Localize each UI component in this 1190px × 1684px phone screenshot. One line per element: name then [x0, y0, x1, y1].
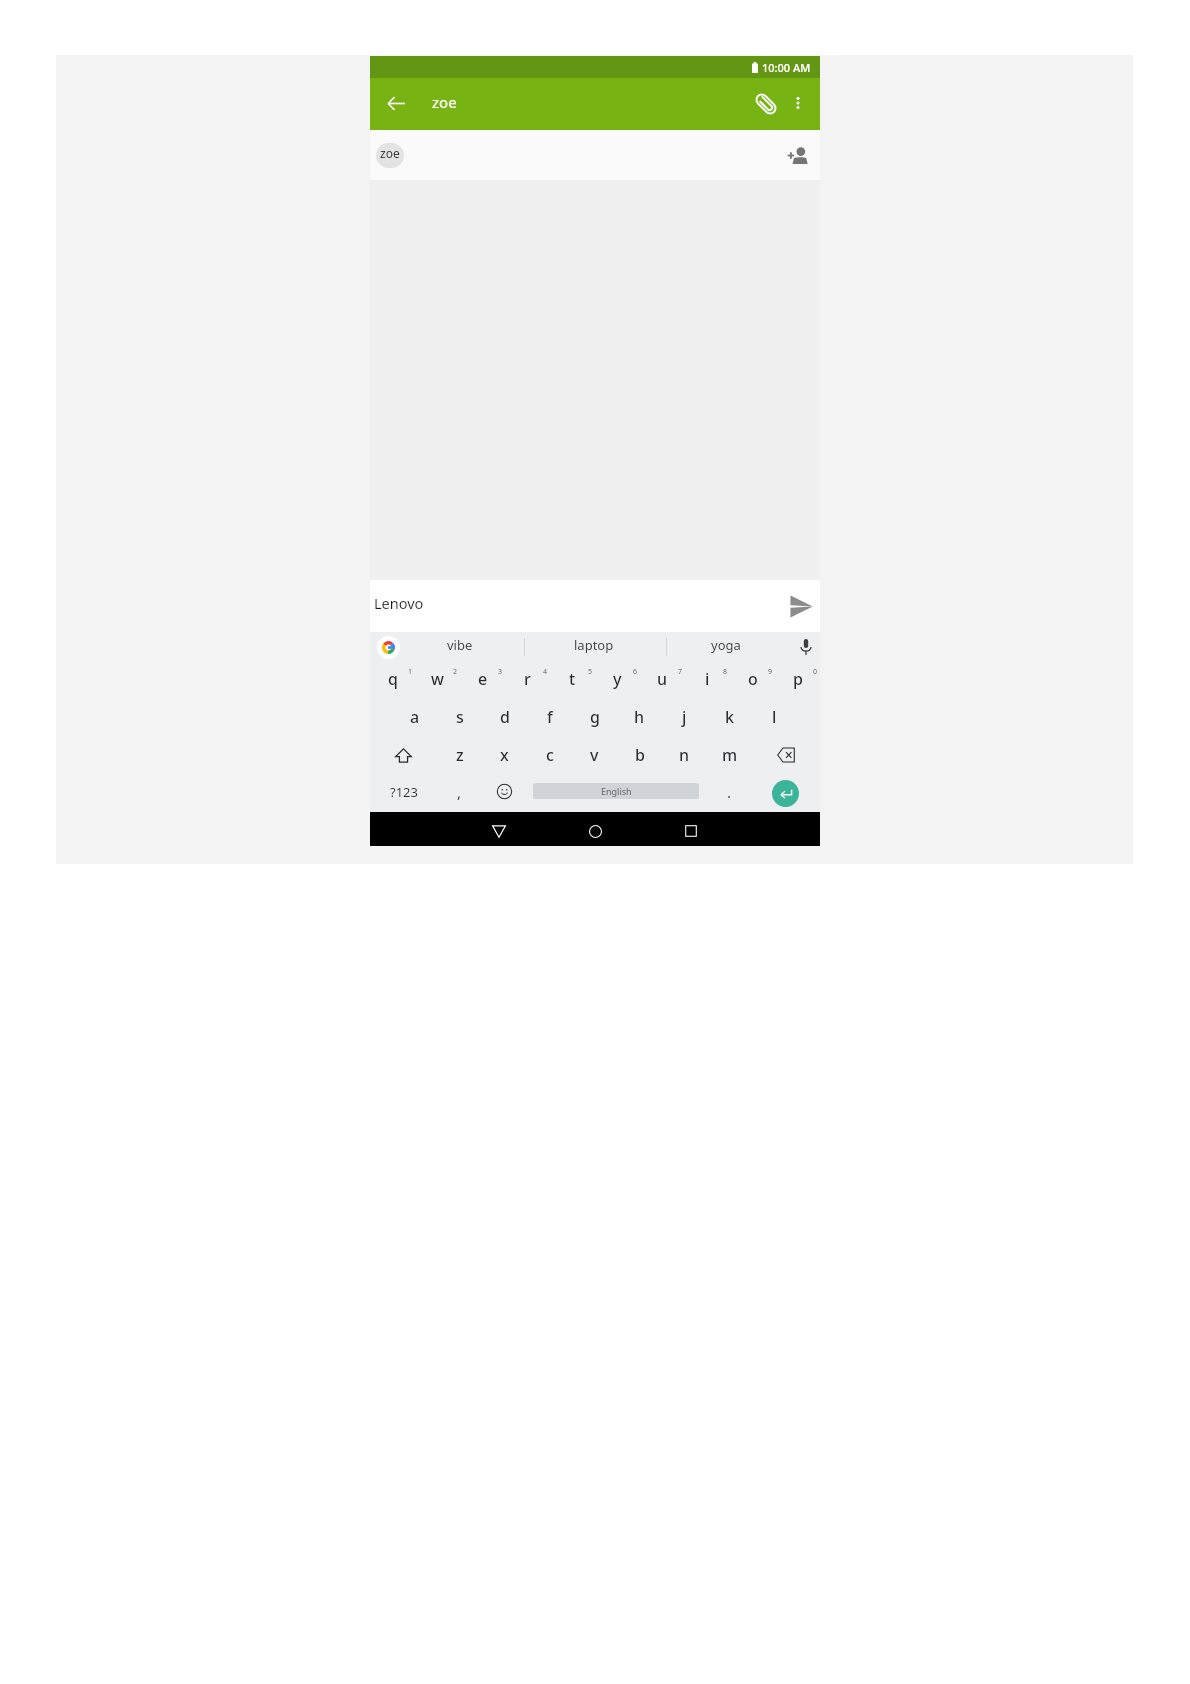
button[interactable]: k — [707, 700, 752, 738]
staticText: x — [500, 744, 509, 766]
button[interactable]: Back — [475, 812, 523, 846]
staticText: zoe — [432, 92, 457, 112]
button[interactable]: Shift — [370, 738, 437, 776]
staticText: 3 — [498, 667, 503, 677]
button[interactable]: Enter — [752, 776, 820, 812]
button[interactable]: f — [527, 700, 572, 738]
staticText: p — [793, 668, 803, 690]
staticText: k — [725, 706, 734, 728]
button[interactable]: i — [685, 662, 730, 700]
staticText: Lenovo — [374, 593, 424, 613]
button[interactable]: j — [662, 700, 707, 738]
staticText: c — [546, 744, 554, 766]
staticText: u — [657, 668, 668, 690]
staticText: 8 — [723, 667, 728, 677]
button[interactable]: Home — [571, 812, 619, 846]
staticText: laptop — [574, 636, 614, 654]
button[interactable]: b — [617, 738, 662, 776]
button[interactable]: Send — [783, 588, 819, 624]
button[interactable]: Recent apps — [667, 812, 715, 846]
staticText: vibe — [447, 636, 473, 654]
staticText: 2 — [453, 667, 458, 677]
button[interactable]: z — [437, 738, 482, 776]
button[interactable]: g — [572, 700, 617, 738]
button[interactable]: r — [505, 662, 550, 700]
button[interactable]: v — [572, 738, 617, 776]
button[interactable]: m — [707, 738, 752, 776]
button[interactable]: zoe — [376, 143, 404, 168]
staticText: j — [682, 706, 687, 728]
button[interactable]: y — [595, 662, 640, 700]
button[interactable]: Google search — [376, 632, 400, 662]
staticText: 0 — [813, 667, 818, 677]
staticText: . — [727, 782, 732, 802]
staticText: i — [705, 668, 710, 690]
button[interactable]: a — [392, 700, 437, 738]
staticText: y — [613, 668, 622, 690]
staticText: v — [590, 744, 599, 766]
staticText: w — [431, 668, 444, 690]
button[interactable]: t — [550, 662, 595, 700]
button[interactable]: , — [437, 776, 482, 812]
staticText: 10:00 AM — [762, 60, 811, 75]
staticText: r — [524, 668, 531, 690]
staticText: l — [772, 706, 777, 728]
staticText: z — [456, 744, 464, 766]
staticText: f — [547, 706, 553, 728]
staticText: t — [569, 668, 576, 690]
staticText: 5 — [588, 667, 593, 677]
button[interactable]: vibe — [397, 632, 523, 662]
button[interactable]: c — [527, 738, 572, 776]
staticText: 7 — [678, 667, 683, 677]
staticText: e — [478, 668, 488, 690]
staticText: b — [635, 744, 645, 766]
staticText: 9 — [768, 667, 773, 677]
staticText: yoga — [711, 636, 741, 654]
button[interactable]: ?123 — [370, 776, 437, 812]
staticText: g — [590, 706, 600, 728]
button[interactable]: p — [775, 662, 820, 700]
button[interactable]: h — [617, 700, 662, 738]
button[interactable]: s — [437, 700, 482, 738]
staticText: o — [748, 668, 758, 690]
button[interactable]: Backspace — [752, 738, 820, 776]
staticText: 4 — [543, 667, 548, 677]
button[interactable]: laptop — [523, 632, 664, 662]
button[interactable]: o — [730, 662, 775, 700]
staticText: 6 — [633, 667, 638, 677]
button[interactable]: Voice input — [793, 634, 819, 660]
button[interactable]: e — [460, 662, 505, 700]
staticText: s — [456, 706, 464, 728]
staticText: d — [500, 706, 510, 728]
button[interactable]: x — [482, 738, 527, 776]
button[interactable]: yoga — [666, 632, 786, 662]
button[interactable]: English — [533, 783, 699, 799]
button[interactable]: Navigate up — [374, 78, 418, 130]
staticText: ?123 — [390, 783, 418, 801]
staticText: , — [457, 782, 462, 802]
button[interactable]: More options — [783, 91, 813, 117]
staticText: English — [601, 785, 632, 797]
staticText: a — [410, 706, 420, 728]
button[interactable]: Add recipient — [780, 138, 814, 172]
staticText: 1 — [408, 667, 413, 677]
button[interactable]: . — [707, 776, 752, 812]
staticText: h — [634, 706, 645, 728]
button[interactable]: l — [752, 700, 797, 738]
button[interactable]: Emoji — [482, 776, 527, 812]
button[interactable]: Attach file — [750, 88, 782, 120]
staticText: zoe — [380, 145, 400, 161]
button[interactable]: w — [415, 662, 460, 700]
staticText: q — [388, 668, 398, 690]
button[interactable]: d — [482, 700, 527, 738]
staticText: m — [722, 744, 738, 766]
button[interactable]: n — [662, 738, 707, 776]
button[interactable]: u — [640, 662, 685, 700]
button[interactable]: q — [370, 662, 415, 700]
staticText: n — [679, 744, 690, 766]
